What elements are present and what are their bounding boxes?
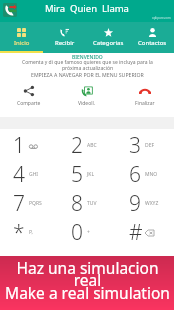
- staticText: ABC: [87, 142, 97, 149]
- staticText: Categorias: [93, 39, 124, 47]
- staticText: 2: [71, 131, 83, 160]
- staticText: PQRS: [29, 200, 42, 207]
- button[interactable]: Finalizar: [116, 85, 174, 107]
- button[interactable]: Inicio: [0, 22, 43, 51]
- button[interactable]: *: [0, 218, 58, 247]
- staticText: *: [13, 218, 25, 247]
- staticText: 9: [129, 189, 141, 218]
- button[interactable]: 0: [58, 218, 116, 247]
- button[interactable]: Contactos: [130, 22, 174, 51]
- staticText: Finalizar: [135, 100, 155, 107]
- staticText: 0: [71, 218, 83, 247]
- staticText: 7: [13, 189, 25, 218]
- staticText: 3: [129, 131, 141, 160]
- staticText: EMPIEZA A NAVEGAR POR EL MENU SUPERIOR: [31, 71, 144, 78]
- staticText: Comenta y di que famoso quieres que se i…: [22, 59, 153, 72]
- staticText: apkpure.com: [152, 16, 171, 20]
- button[interactable]: 8: [58, 189, 116, 218]
- staticText: JKL: [87, 171, 95, 178]
- button[interactable]: Mira Quien Llama: [3, 3, 17, 17]
- button[interactable]: Recibir: [43, 22, 86, 51]
- button[interactable]: 3: [116, 131, 174, 160]
- staticText: DEF: [145, 142, 155, 149]
- staticText: 4: [13, 160, 25, 189]
- staticText: Comparte: [17, 100, 41, 107]
- staticText: GHI: [29, 171, 39, 178]
- button[interactable]: #: [116, 218, 174, 247]
- staticText: TUV: [87, 200, 97, 207]
- staticText: P,: [29, 229, 33, 236]
- staticText: Videoll.: [78, 100, 96, 107]
- button[interactable]: 4: [0, 160, 58, 189]
- staticText: MNO: [145, 171, 158, 178]
- staticText: Inicio: [14, 39, 30, 47]
- button[interactable]: Videoll.: [58, 85, 116, 107]
- button[interactable]: 6: [116, 160, 174, 189]
- staticText: 6: [129, 160, 141, 189]
- staticText: Haz una simulacion real Make a real simu…: [5, 257, 170, 304]
- button[interactable]: 1: [0, 131, 58, 160]
- staticText: Mira Quien Llama: [45, 2, 129, 15]
- staticText: 8: [71, 189, 83, 218]
- staticText: 1: [13, 131, 25, 160]
- button[interactable]: Categorias: [86, 22, 130, 51]
- button[interactable]: 9: [116, 189, 174, 218]
- button[interactable]: Haz una simulacion real Make a real simu…: [0, 256, 174, 310]
- button[interactable]: 2: [58, 131, 116, 160]
- button[interactable]: Comparte: [0, 85, 58, 107]
- staticText: Contactos: [138, 39, 167, 47]
- button[interactable]: 7: [0, 189, 58, 218]
- staticText: +: [87, 229, 90, 236]
- button[interactable]: 5: [58, 160, 116, 189]
- staticText: 5: [71, 160, 83, 189]
- staticText: #: [129, 218, 141, 247]
- staticText: WXYZ: [145, 200, 159, 207]
- staticText: BIENVENIDO: [72, 54, 103, 61]
- staticText: Recibir: [55, 39, 75, 47]
